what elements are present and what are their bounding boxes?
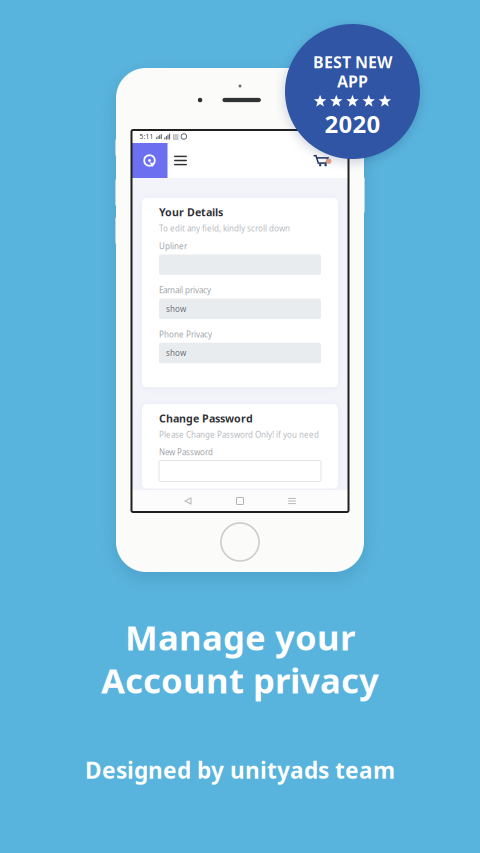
staticText: Designed by unityads team <box>85 755 395 785</box>
staticText: ▨ <box>173 133 179 140</box>
staticText: APP <box>337 71 368 92</box>
staticText: 5:11 <box>139 132 153 141</box>
staticText: Phone Privacy <box>159 329 212 340</box>
staticText: New Password <box>159 447 213 458</box>
staticText: Earnail privacy <box>159 285 211 295</box>
staticText: show <box>166 303 186 314</box>
staticText: Manage your <box>125 614 355 660</box>
button[interactable]: Home <box>214 490 266 512</box>
staticText: Change Password <box>159 411 253 425</box>
staticText: Account privacy <box>101 657 379 703</box>
button[interactable]: Cart <box>305 143 339 178</box>
button[interactable]: Recents <box>266 490 318 512</box>
staticText: Upliner <box>159 241 187 251</box>
button[interactable]: Back <box>162 490 214 512</box>
staticText: Please Change Password Only! if you need <box>159 429 319 440</box>
button[interactable]: Menu <box>167 143 193 178</box>
staticText: BEST NEW <box>313 51 392 72</box>
button[interactable]: Home <box>131 143 167 178</box>
staticText: 2020 <box>324 108 380 140</box>
staticText: show <box>166 348 186 358</box>
staticText: Your Details <box>159 205 223 219</box>
staticText: To edit any field, kindly scroll down <box>159 223 290 234</box>
